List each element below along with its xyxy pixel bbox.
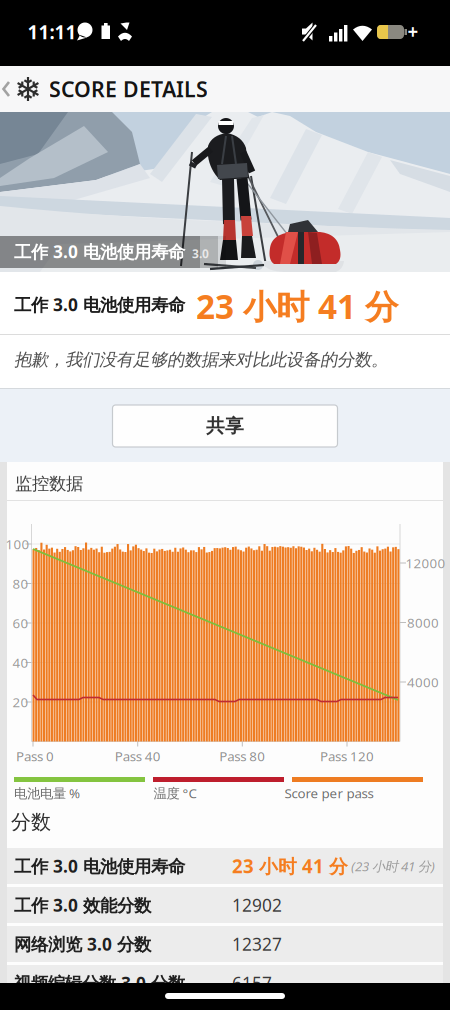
staticText: + [407, 19, 418, 44]
button[interactable]: 工作 3.0 电池使用寿命 [7, 848, 443, 884]
staticText: 60 [12, 614, 28, 632]
staticText: 8000 [407, 614, 439, 631]
staticText: 20 [12, 693, 28, 711]
staticText: (23 小时 41 分) [348, 857, 435, 875]
button[interactable]: 网络浏览 3.0 分数 [7, 926, 443, 962]
button[interactable]: 视频编辑分数 3.0 分数 [7, 965, 443, 1001]
staticText: 11:11 [27, 20, 76, 44]
staticText: 抱歉，我们没有足够的数据来对比此设备的分数。 [14, 349, 388, 370]
staticText: 分数 [11, 810, 51, 834]
staticText: 40 [12, 654, 28, 671]
staticText: 温度 °C [153, 784, 196, 802]
staticText: 4000 [407, 673, 439, 691]
staticText: 网络浏览 3.0 分数 [14, 932, 151, 955]
staticText: 工作 3.0 电池使用寿命 [14, 854, 185, 877]
staticText: Pass 80 [219, 747, 265, 765]
staticText: 监控数据 [15, 473, 83, 494]
staticText: 100 [5, 535, 29, 553]
staticText: Score per pass [284, 784, 373, 802]
button[interactable]: 工作 3.0 效能分数 [7, 887, 443, 923]
staticText: 80 [12, 575, 28, 592]
staticText: SCORE DETAILS [49, 75, 208, 103]
staticText: 12902 [232, 893, 282, 916]
staticText: 6157 [232, 971, 272, 994]
staticText: 12327 [232, 932, 282, 955]
staticText: 工作 3.0 效能分数 [14, 893, 151, 916]
button[interactable]: Back [2, 76, 41, 102]
staticText: 工作 3.0 电池使用寿命 [14, 293, 185, 316]
button[interactable]: 共享 [112, 405, 337, 447]
staticText: 23 小时 41 分 [196, 284, 398, 328]
staticText: 电池电量 % [14, 784, 80, 802]
staticText: Pass 40 [115, 747, 161, 765]
staticText: 12000 [405, 554, 445, 572]
staticText: 23 小时 41 分 [232, 854, 348, 878]
staticText: 共享 [206, 414, 244, 437]
staticText: 视频编辑分数 3.0 分数 [14, 971, 185, 994]
staticText: 工作 3.0 电池使用寿命 [14, 240, 185, 263]
staticText: Pass 0 [16, 747, 54, 765]
staticText: 3.0 [192, 245, 209, 261]
staticText: Pass 120 [320, 747, 374, 765]
